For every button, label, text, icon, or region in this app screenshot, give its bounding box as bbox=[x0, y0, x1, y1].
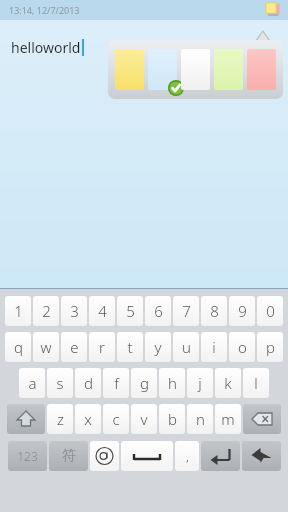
staticText: w bbox=[40, 337, 52, 357]
button[interactable]: Colour 2 bbox=[148, 49, 177, 90]
staticText: 3 bbox=[70, 301, 79, 321]
staticText: j bbox=[198, 373, 202, 393]
staticText: l bbox=[254, 373, 258, 393]
button[interactable]: Note color bbox=[263, 0, 283, 20]
button[interactable]: At sign bbox=[90, 441, 119, 471]
staticText: f bbox=[114, 373, 119, 393]
staticText: 符 bbox=[62, 447, 76, 465]
button[interactable]: 9 bbox=[229, 296, 255, 326]
staticText: o bbox=[238, 337, 247, 357]
staticText: m bbox=[221, 409, 235, 429]
staticText: d bbox=[84, 373, 93, 393]
button[interactable]: Back bbox=[242, 441, 281, 471]
staticText: 6 bbox=[154, 301, 163, 321]
button[interactable]: s bbox=[47, 368, 73, 398]
button[interactable]: m bbox=[215, 404, 241, 434]
button[interactable]: 4 bbox=[89, 296, 115, 326]
staticText: 0 bbox=[266, 301, 275, 321]
staticText: 123 bbox=[17, 448, 38, 464]
button[interactable]: 1 bbox=[5, 296, 31, 326]
button[interactable]: r bbox=[89, 332, 115, 362]
button[interactable]: Shift bbox=[7, 404, 45, 434]
button[interactable]: b bbox=[159, 404, 185, 434]
button[interactable]: Colour 3 bbox=[181, 49, 210, 90]
staticText: 4 bbox=[98, 301, 107, 321]
button[interactable]: a bbox=[19, 368, 45, 398]
staticText: x bbox=[84, 409, 92, 429]
button[interactable]: 3 bbox=[61, 296, 87, 326]
staticText: v bbox=[140, 409, 148, 429]
button[interactable]: 8 bbox=[201, 296, 227, 326]
button[interactable]: 符 bbox=[49, 441, 88, 471]
staticText: r bbox=[99, 337, 105, 357]
button[interactable]: Enter bbox=[201, 441, 240, 471]
staticText: c bbox=[112, 409, 120, 429]
staticText: b bbox=[168, 409, 177, 429]
button[interactable]: e bbox=[61, 332, 87, 362]
staticText: 7 bbox=[182, 301, 191, 321]
staticText: p bbox=[266, 337, 275, 357]
button[interactable]: , bbox=[175, 441, 199, 471]
button[interactable]: o bbox=[229, 332, 255, 362]
staticText: 5 bbox=[126, 301, 135, 321]
staticText: h bbox=[168, 373, 177, 393]
staticText: k bbox=[224, 373, 232, 393]
button[interactable]: k bbox=[215, 368, 241, 398]
button[interactable]: l bbox=[243, 368, 269, 398]
button[interactable]: u bbox=[173, 332, 199, 362]
button[interactable]: Space bbox=[121, 441, 173, 471]
staticText: 13:14, 12/7/2013 bbox=[9, 4, 80, 16]
staticText: u bbox=[182, 337, 191, 357]
button[interactable]: 5 bbox=[117, 296, 143, 326]
button[interactable]: Colour 4 bbox=[214, 49, 243, 90]
button[interactable]: 0 bbox=[257, 296, 283, 326]
button[interactable]: 7 bbox=[173, 296, 199, 326]
staticText: q bbox=[14, 337, 23, 357]
staticText: y bbox=[154, 337, 162, 357]
button[interactable]: w bbox=[33, 332, 59, 362]
button[interactable]: g bbox=[131, 368, 157, 398]
staticText: 1 bbox=[14, 301, 23, 321]
staticText: t bbox=[127, 337, 133, 357]
button[interactable]: Colour 5 bbox=[247, 49, 276, 90]
staticText: i bbox=[212, 337, 216, 357]
button[interactable]: i bbox=[201, 332, 227, 362]
button[interactable]: y bbox=[145, 332, 171, 362]
button[interactable]: z bbox=[47, 404, 73, 434]
button[interactable]: t bbox=[117, 332, 143, 362]
staticText: , bbox=[186, 447, 189, 465]
button[interactable]: 6 bbox=[145, 296, 171, 326]
staticText: a bbox=[28, 373, 37, 393]
button[interactable]: c bbox=[103, 404, 129, 434]
staticText: helloworld bbox=[11, 38, 81, 57]
staticText: 2 bbox=[42, 301, 51, 321]
staticText: n bbox=[196, 409, 205, 429]
button[interactable]: v bbox=[131, 404, 157, 434]
button[interactable]: q bbox=[5, 332, 31, 362]
button[interactable]: Backspace bbox=[243, 404, 281, 434]
staticText: z bbox=[57, 409, 64, 429]
button[interactable]: 2 bbox=[33, 296, 59, 326]
button[interactable]: x bbox=[75, 404, 101, 434]
button[interactable]: 123 bbox=[8, 441, 47, 471]
button[interactable]: d bbox=[75, 368, 101, 398]
staticText: g bbox=[140, 373, 149, 393]
button[interactable]: Colour 1 bbox=[115, 49, 144, 90]
staticText: s bbox=[56, 373, 64, 393]
staticText: e bbox=[70, 337, 79, 357]
button[interactable]: n bbox=[187, 404, 213, 434]
staticText: 9 bbox=[238, 301, 247, 321]
staticText: 8 bbox=[210, 301, 219, 321]
button[interactable]: p bbox=[257, 332, 283, 362]
button[interactable]: h bbox=[159, 368, 185, 398]
button[interactable]: f bbox=[103, 368, 129, 398]
button[interactable]: j bbox=[187, 368, 213, 398]
